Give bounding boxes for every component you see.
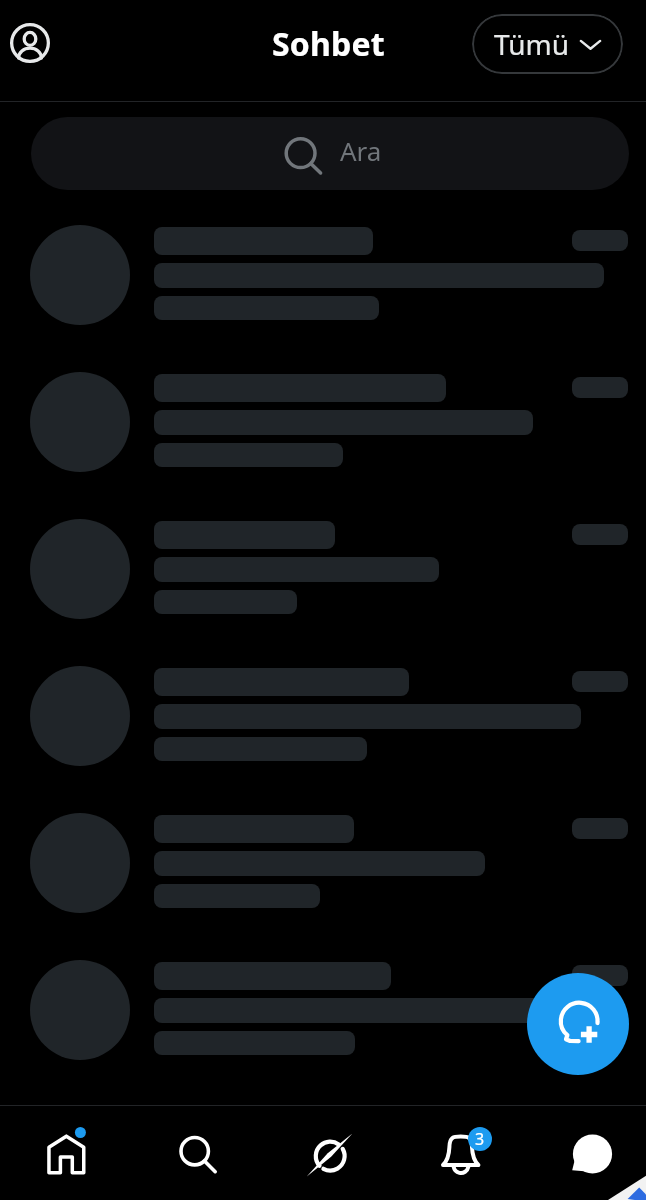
button[interactable]: Grok	[274, 1105, 386, 1200]
staticText: 3	[475, 1128, 485, 1150]
button[interactable]: New message	[527, 973, 629, 1075]
staticText: Tümü	[494, 25, 569, 63]
button[interactable]: Tümü	[472, 14, 623, 74]
staticText: Ara	[340, 133, 382, 168]
button[interactable]: Ara	[31, 117, 629, 190]
button[interactable]	[0, 644, 646, 791]
button[interactable]: Notifications	[405, 1105, 517, 1200]
button[interactable]	[0, 203, 646, 350]
button[interactable]	[0, 938, 646, 1085]
button[interactable]: Home	[10, 1105, 122, 1200]
button[interactable]: Profile	[0, 13, 60, 73]
button[interactable]: Search	[139, 1105, 251, 1200]
staticText: Sohbet	[272, 22, 385, 66]
button[interactable]	[0, 791, 646, 938]
button[interactable]: Messages	[536, 1105, 646, 1200]
button[interactable]	[0, 350, 646, 497]
button[interactable]	[0, 497, 646, 644]
